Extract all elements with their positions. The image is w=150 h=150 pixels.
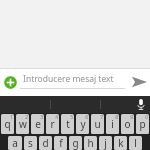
button[interactable]: u xyxy=(91,114,104,134)
staticText: 2 xyxy=(25,114,28,121)
staticText: 1 xyxy=(10,114,13,121)
staticText: 3 xyxy=(40,114,43,121)
staticText: u xyxy=(94,117,101,131)
button[interactable]: w xyxy=(16,114,29,134)
button[interactable]: l xyxy=(129,136,142,150)
staticText: 7 xyxy=(100,114,103,121)
button[interactable]: j xyxy=(99,136,112,150)
staticText: e xyxy=(35,117,41,131)
button[interactable]: g xyxy=(69,136,82,150)
button[interactable]: Add attachment xyxy=(0,68,20,96)
staticText: y xyxy=(80,117,86,131)
staticText: r xyxy=(50,117,55,131)
staticText: 6 xyxy=(85,114,88,121)
button[interactable]: o xyxy=(121,114,134,134)
staticText: o xyxy=(124,117,131,131)
button[interactable]: q xyxy=(1,114,14,134)
button[interactable]: h xyxy=(84,136,97,150)
button[interactable]: f xyxy=(54,136,67,150)
staticText: k xyxy=(118,136,124,150)
button[interactable]: t xyxy=(61,114,74,134)
button[interactable]: k xyxy=(114,136,127,150)
staticText: 5 xyxy=(70,114,73,121)
staticText: g xyxy=(72,136,79,150)
button[interactable]: e xyxy=(31,114,44,134)
button[interactable]: Introducere mesaj text xyxy=(20,68,125,96)
button[interactable] xyxy=(101,96,150,113)
button[interactable]: d xyxy=(39,136,52,150)
staticText: 4 xyxy=(55,114,58,121)
staticText: i xyxy=(111,117,114,131)
button[interactable]: a xyxy=(8,136,22,150)
staticText: j xyxy=(104,136,107,150)
button[interactable]: p xyxy=(136,114,149,134)
button[interactable]: i xyxy=(106,114,119,134)
staticText: d xyxy=(42,136,49,150)
staticText: w xyxy=(19,117,27,131)
staticText: t xyxy=(66,117,70,131)
staticText: 8 xyxy=(115,114,118,121)
button[interactable]: r xyxy=(46,114,59,134)
staticText: l xyxy=(134,136,137,150)
staticText: h xyxy=(87,136,94,150)
staticText: f xyxy=(59,136,63,150)
staticText: 0 xyxy=(145,114,148,121)
button[interactable]: s xyxy=(24,136,37,150)
staticText: a xyxy=(12,136,18,150)
staticText: Introducere mesaj text xyxy=(23,73,114,85)
staticText: p xyxy=(139,117,146,131)
staticText: 9 xyxy=(130,114,133,121)
staticText: q xyxy=(4,117,11,131)
button[interactable]: Voice input xyxy=(132,96,150,113)
staticText: s xyxy=(28,136,33,150)
button[interactable]: y xyxy=(76,114,89,134)
button[interactable]: Send xyxy=(128,68,150,96)
